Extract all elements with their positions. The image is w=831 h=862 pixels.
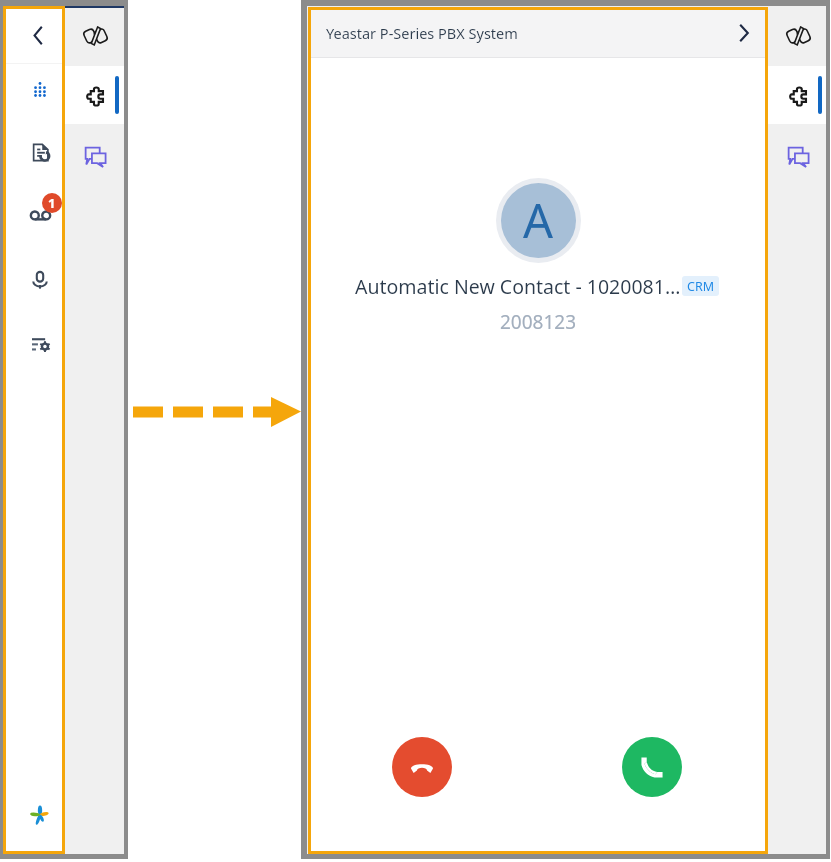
button[interactable]: Open bbox=[731, 20, 757, 46]
other: Open bbox=[739, 24, 749, 42]
other: Chat bbox=[85, 147, 106, 166]
other: Back bbox=[33, 26, 43, 45]
staticText: 2008123 bbox=[500, 309, 577, 335]
button[interactable]: Answer call bbox=[622, 737, 682, 797]
staticText: CRM bbox=[687, 278, 715, 295]
button[interactable]: Chat bbox=[78, 139, 112, 173]
other: Settings bbox=[32, 337, 50, 352]
other: Answer call bbox=[641, 757, 663, 778]
other: Add-ins bbox=[87, 87, 104, 106]
button[interactable]: Settings bbox=[25, 330, 57, 359]
button[interactable] bbox=[65, 66, 124, 124]
staticText: A bbox=[523, 188, 554, 252]
other: Power Apps bbox=[85, 26, 106, 46]
other: Dialpad bbox=[34, 82, 46, 97]
other: Microphone bbox=[32, 271, 48, 289]
button[interactable]: Linkus bbox=[24, 798, 56, 833]
button[interactable]: Back bbox=[26, 19, 50, 52]
other: Decline call bbox=[411, 762, 433, 773]
other: Add-ins bbox=[790, 87, 807, 106]
button[interactable]: Add-ins bbox=[781, 79, 815, 113]
button[interactable]: Chat bbox=[781, 139, 815, 173]
button[interactable]: Call logs bbox=[26, 137, 56, 168]
other: Linkus bbox=[31, 805, 49, 826]
staticText: Yeastar P-Series PBX System bbox=[326, 23, 518, 43]
button[interactable]: Decline call bbox=[392, 737, 452, 797]
button[interactable]: Microphone bbox=[25, 264, 55, 296]
button[interactable]: Dialpad bbox=[27, 75, 53, 104]
other: Call logs bbox=[33, 144, 49, 161]
button[interactable] bbox=[768, 66, 826, 124]
button[interactable]: Add-ins bbox=[78, 79, 112, 113]
staticText: 1 bbox=[48, 194, 56, 212]
button[interactable]: Power Apps bbox=[78, 19, 112, 53]
button[interactable]: Voicemail bbox=[24, 204, 57, 229]
button[interactable]: Yeastar P-Series PBX System bbox=[311, 10, 765, 58]
other: Voicemail bbox=[31, 211, 50, 222]
button[interactable]: Power Apps bbox=[781, 19, 815, 53]
staticText: Automatic New Contact - 1020081… bbox=[355, 273, 681, 300]
other: Power Apps bbox=[788, 26, 809, 46]
other: Chat bbox=[788, 147, 809, 166]
